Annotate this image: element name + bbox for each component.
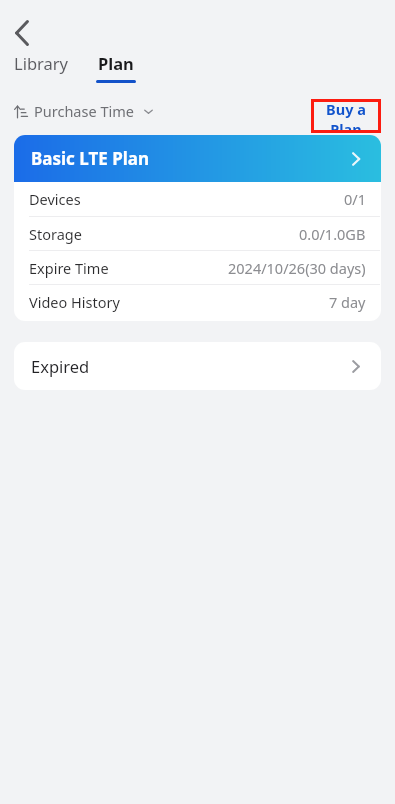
- button[interactable]: Expired: [14, 342, 381, 390]
- staticText: Devices: [29, 189, 81, 209]
- button[interactable]: Basic LTE Plan: [14, 135, 381, 182]
- staticText: 2024/10/26(30 days): [228, 258, 366, 278]
- staticText: 0/1: [344, 189, 366, 209]
- staticText: Basic LTE Plan: [31, 147, 150, 170]
- staticText: Purchase Time: [34, 101, 134, 121]
- staticText: Library: [14, 52, 69, 74]
- button[interactable]: Purchase Time: [13, 101, 154, 121]
- button[interactable]: Devices: [14, 182, 381, 216]
- staticText: Expired: [31, 355, 90, 377]
- button[interactable]: Expire Time: [14, 251, 381, 284]
- staticText: Expire Time: [29, 258, 109, 278]
- staticText: 7 day: [329, 292, 366, 312]
- staticText: Storage: [29, 224, 82, 244]
- staticText: Buy a Plan: [311, 99, 381, 133]
- button[interactable]: Storage: [14, 217, 381, 250]
- button[interactable]: Video History: [14, 285, 381, 318]
- button[interactable]: Library: [14, 52, 69, 74]
- button[interactable]: Buy a Plan: [311, 99, 381, 133]
- staticText: Video History: [29, 292, 120, 312]
- button[interactable]: Back: [4, 14, 42, 52]
- button[interactable]: Plan: [96, 52, 136, 83]
- staticText: Plan: [98, 52, 134, 74]
- staticText: 0.0/1.0GB: [299, 224, 366, 244]
